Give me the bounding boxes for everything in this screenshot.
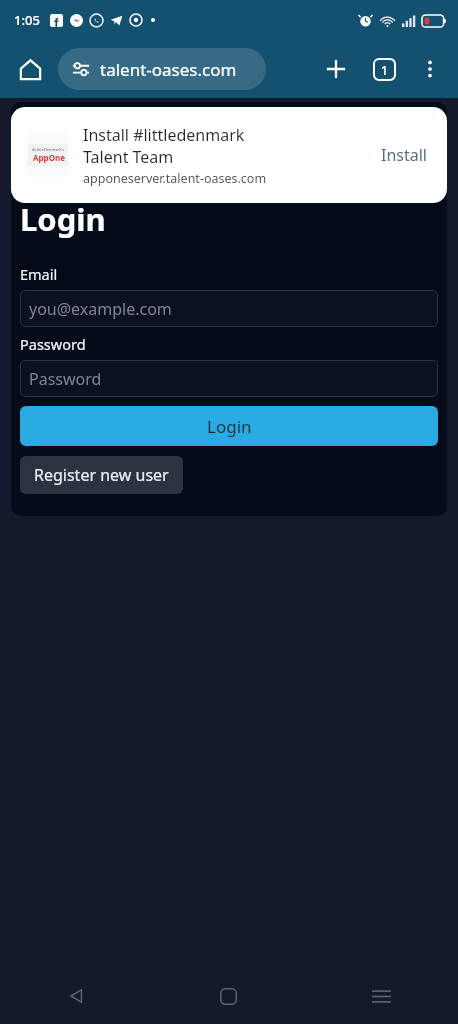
staticText: Password	[20, 334, 86, 354]
staticText: Register new user	[34, 464, 169, 486]
button[interactable]: New tab	[314, 47, 358, 91]
button[interactable]: Login	[20, 406, 438, 446]
button[interactable]: Password	[20, 360, 438, 397]
staticText: you@example.com	[29, 298, 172, 320]
staticText: Install #littledenmark	[83, 124, 245, 146]
button[interactable]: Home	[152, 968, 305, 1024]
staticText: #LittleDenmark's	[32, 147, 65, 152]
button[interactable]: Install	[375, 138, 433, 172]
staticText: Email	[20, 264, 58, 284]
staticText: 1:05	[14, 11, 40, 29]
staticText: Login	[207, 415, 252, 438]
staticText: talent-oases.com	[100, 58, 237, 81]
staticText: 1	[381, 62, 388, 78]
staticText: Install	[381, 144, 427, 166]
button[interactable]: Tabs, 1 open	[362, 47, 406, 91]
staticText: Talent Team	[83, 146, 174, 168]
staticText: apponeserver.talent-oases.com	[83, 170, 267, 187]
button[interactable]: Register new user	[20, 456, 183, 494]
staticText: Password	[29, 368, 102, 390]
button[interactable]: talent-oases.com	[58, 48, 266, 90]
staticText: AppOne	[33, 152, 65, 163]
staticText: Login	[20, 198, 106, 240]
button[interactable]: you@example.com	[20, 290, 438, 327]
button[interactable]: Home	[8, 47, 52, 91]
button[interactable]: Recent apps	[305, 968, 458, 1024]
button[interactable]: #LittleDenmark's	[11, 107, 447, 203]
button[interactable]: Back	[0, 968, 152, 1024]
button[interactable]: More options	[408, 47, 452, 91]
